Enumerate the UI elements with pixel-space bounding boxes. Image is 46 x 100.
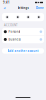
staticText: Personal <box>8 30 20 33</box>
staticText: Business <box>8 38 20 41</box>
button[interactable]: Business <box>2 36 44 43</box>
staticText: Add another account <box>7 49 38 53</box>
staticText: < <box>3 5 5 11</box>
staticText: Settings <box>17 6 28 10</box>
staticText: 9:41 <box>3 1 10 4</box>
button[interactable]: Personal <box>2 28 44 35</box>
button[interactable]: Done <box>36 5 44 10</box>
staticText: ACCOUNT <box>4 23 17 27</box>
staticText: Done <box>36 6 44 10</box>
button[interactable]: Back <box>2 5 7 10</box>
button[interactable]: Add another account <box>2 48 44 54</box>
